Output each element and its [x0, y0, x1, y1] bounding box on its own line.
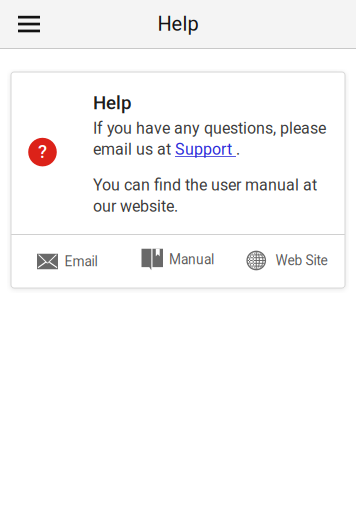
staticText: Help	[93, 92, 131, 114]
staticText: Email	[64, 253, 97, 270]
staticText: If you have any questions, please email …	[93, 119, 326, 159]
staticText: You can find the user manual at our webs…	[93, 176, 317, 216]
button[interactable]: Email	[37, 235, 97, 288]
staticText: Help	[157, 12, 198, 36]
staticText: Web Site	[275, 252, 327, 269]
button[interactable]: Manual	[141, 233, 214, 286]
button[interactable]: Web Site	[246, 234, 327, 287]
button[interactable]: Support	[171, 210, 233, 227]
staticText: Manual	[169, 251, 214, 268]
button[interactable]: Menu	[0, 1, 52, 47]
staticText: ?	[38, 141, 47, 163]
